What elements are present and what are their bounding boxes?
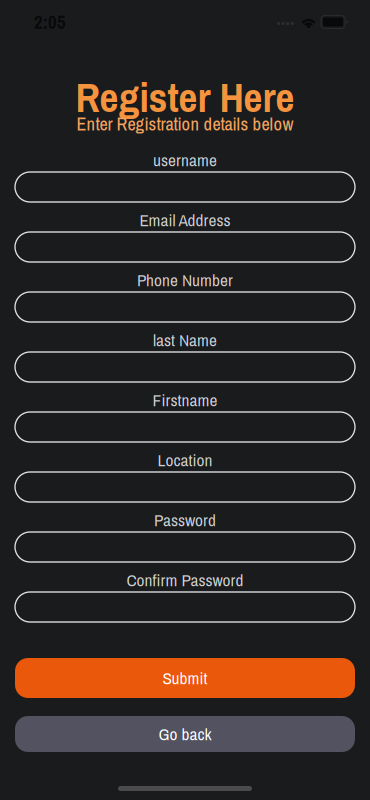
staticText: Enter Registration details below [76,112,293,136]
staticText: Register Here [75,69,294,125]
staticText: Location [157,448,212,472]
button[interactable]: last Name [15,352,355,382]
staticText: 2:05 [34,9,66,34]
button[interactable]: Email Address [15,232,355,262]
button[interactable]: Submit [15,658,355,698]
button[interactable]: Phone Number [15,292,355,322]
button[interactable]: Firstname [15,412,355,442]
staticText: Submit [162,666,207,690]
button[interactable]: Location [15,472,355,502]
staticText: username [153,148,217,172]
button[interactable]: Confirm Password [15,592,355,622]
staticText: Email Address [139,208,230,232]
button[interactable]: username [15,172,355,202]
staticText: last Name [153,328,217,352]
staticText: Password [154,508,216,532]
button[interactable]: Password [15,532,355,562]
staticText: Confirm Password [126,568,243,592]
staticText: Firstname [152,388,217,412]
button[interactable]: Go back [15,716,355,752]
staticText: Phone Number [137,268,233,292]
staticText: Go back [158,722,211,746]
